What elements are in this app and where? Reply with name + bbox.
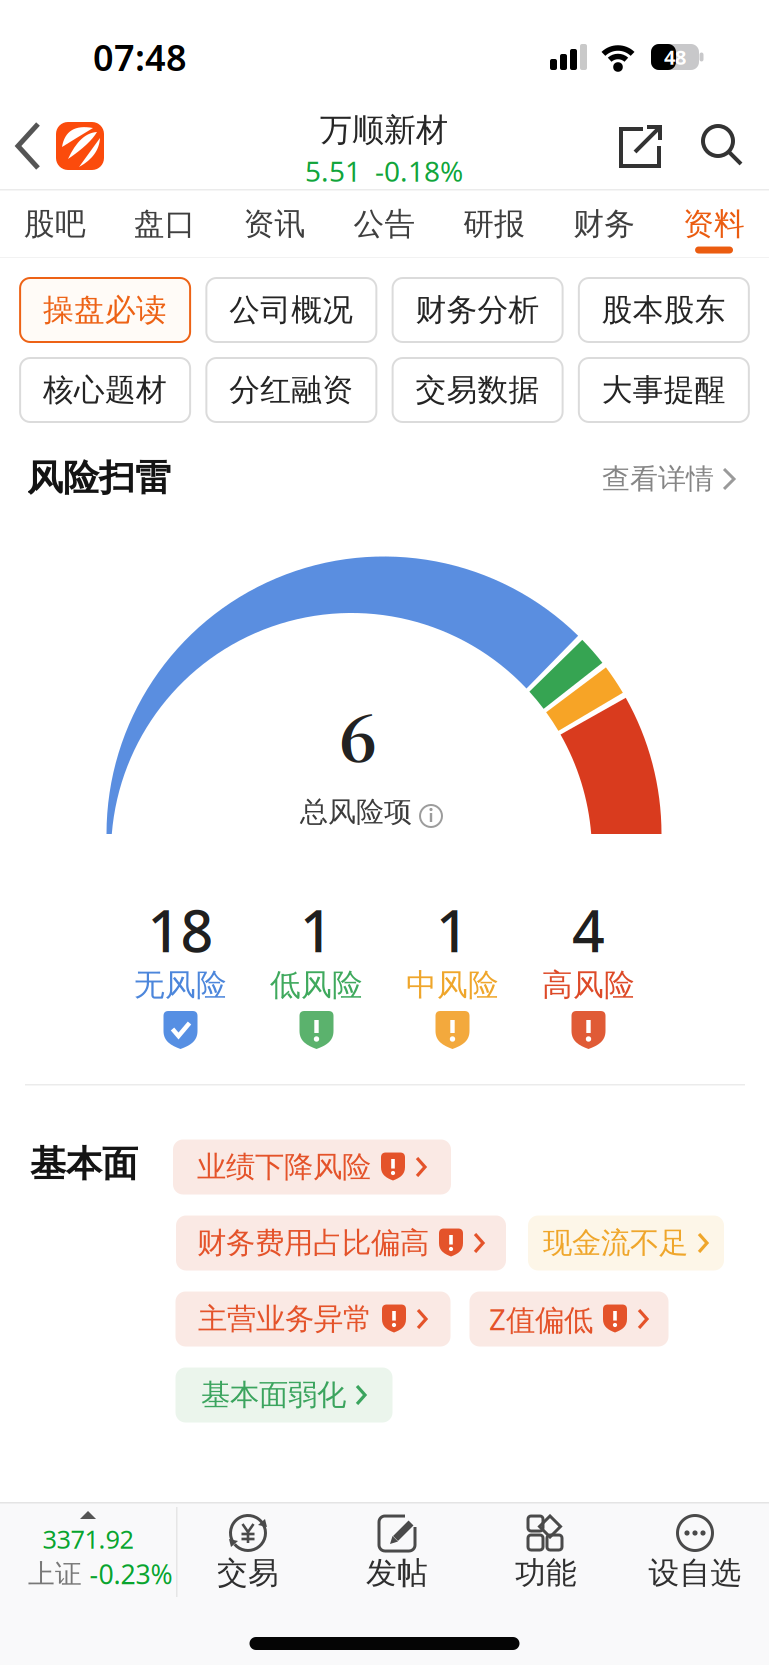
staticText: 中风险 bbox=[406, 966, 499, 1004]
staticText: 分红融资 bbox=[229, 371, 353, 409]
button[interactable]: 总风险项说明 bbox=[418, 803, 444, 829]
button[interactable]: 研报 bbox=[440, 191, 549, 257]
staticText: 股本股东 bbox=[602, 291, 726, 329]
staticText: Z值偏低 bbox=[489, 1299, 593, 1338]
staticText: 财务 bbox=[573, 205, 635, 243]
staticText: 基本面弱化 bbox=[201, 1377, 346, 1413]
button[interactable]: 交易数据 bbox=[393, 358, 563, 422]
staticText: 主营业务异常 bbox=[198, 1301, 372, 1337]
button[interactable]: 股本股东 bbox=[579, 278, 749, 342]
button[interactable]: Z值偏低 bbox=[469, 1291, 668, 1346]
button[interactable]: 资讯 bbox=[220, 191, 329, 257]
button[interactable]: 主营业务异常 bbox=[175, 1291, 450, 1346]
button[interactable]: 盘口 bbox=[110, 191, 219, 257]
button[interactable]: 财务 bbox=[550, 191, 659, 257]
staticText: 低风险 bbox=[270, 966, 363, 1004]
staticText: 48 bbox=[664, 44, 686, 70]
staticText: 设自选 bbox=[648, 1554, 741, 1592]
staticText: 查看详情 bbox=[602, 462, 714, 496]
button[interactable]: 设自选 bbox=[640, 1503, 750, 1595]
staticText: 财务费用占比偏高 bbox=[197, 1225, 429, 1261]
staticText: 操盘必读 bbox=[43, 291, 167, 329]
staticText: 大事提醒 bbox=[602, 371, 726, 409]
button[interactable]: 交易 bbox=[193, 1503, 303, 1595]
staticText: 3371.92 bbox=[42, 1522, 133, 1556]
button[interactable]: 公告 bbox=[330, 191, 439, 257]
staticText: 核心题材 bbox=[43, 371, 167, 409]
button[interactable]: Back bbox=[8, 118, 52, 174]
button[interactable]: Share bbox=[617, 122, 665, 172]
button[interactable]: 大事提醒 bbox=[579, 358, 749, 422]
button[interactable]: 财务分析 bbox=[393, 278, 563, 342]
staticText: 6 bbox=[339, 688, 377, 780]
button[interactable]: 发帖 bbox=[342, 1503, 452, 1595]
staticText: 基本面 bbox=[30, 1142, 138, 1186]
button[interactable]: 股吧 bbox=[0, 191, 109, 257]
button[interactable]: 基本面弱化 bbox=[175, 1367, 392, 1422]
button[interactable]: 业绩下降风险 bbox=[173, 1139, 451, 1194]
staticText: 股吧 bbox=[24, 205, 86, 243]
staticText: 公司概况 bbox=[229, 291, 353, 329]
button[interactable]: 查看详情 bbox=[584, 457, 754, 501]
button[interactable]: 功能 bbox=[491, 1503, 601, 1595]
staticText: 万顺新材 bbox=[320, 110, 448, 150]
button[interactable]: 分红融资 bbox=[206, 358, 376, 422]
staticText: 1 bbox=[436, 892, 469, 968]
button[interactable]: 东方财富 bbox=[56, 122, 104, 170]
button[interactable]: 资料 bbox=[659, 191, 768, 257]
staticText: -0.23% bbox=[89, 1556, 172, 1592]
staticText: 研报 bbox=[463, 205, 525, 243]
button[interactable]: Search bbox=[699, 123, 747, 171]
staticText: 5.51 -0.18% bbox=[305, 152, 463, 190]
staticText: 业绩下降风险 bbox=[197, 1149, 371, 1185]
staticText: 财务分析 bbox=[416, 291, 540, 329]
staticText: 功能 bbox=[515, 1554, 577, 1592]
staticText: 18 bbox=[147, 892, 213, 968]
staticText: 资料 bbox=[683, 205, 745, 243]
button[interactable]: 现金流不足 bbox=[528, 1215, 724, 1270]
staticText: 风险扫雷 bbox=[27, 456, 171, 500]
staticText: 交易 bbox=[217, 1554, 279, 1592]
staticText: 上证 bbox=[28, 1558, 82, 1590]
staticText: 4 bbox=[572, 892, 605, 968]
button[interactable]: 3371.92 bbox=[0, 1503, 176, 1598]
staticText: 1 bbox=[300, 892, 333, 968]
button[interactable]: 核心题材 bbox=[20, 358, 190, 422]
button[interactable]: 公司概况 bbox=[206, 278, 376, 342]
staticText: 交易数据 bbox=[416, 371, 540, 409]
staticText: 高风险 bbox=[542, 966, 635, 1004]
staticText: 盘口 bbox=[134, 205, 196, 243]
staticText: 现金流不足 bbox=[543, 1225, 688, 1261]
staticText: 07:48 bbox=[93, 33, 187, 81]
staticText: 公告 bbox=[353, 205, 415, 243]
staticText: 资讯 bbox=[244, 205, 306, 243]
staticText: 无风险 bbox=[134, 966, 227, 1004]
button[interactable]: 财务费用占比偏高 bbox=[176, 1215, 506, 1270]
staticText: 发帖 bbox=[366, 1554, 428, 1592]
button[interactable]: 操盘必读 bbox=[20, 278, 190, 342]
staticText: 总风险项 bbox=[300, 795, 412, 829]
